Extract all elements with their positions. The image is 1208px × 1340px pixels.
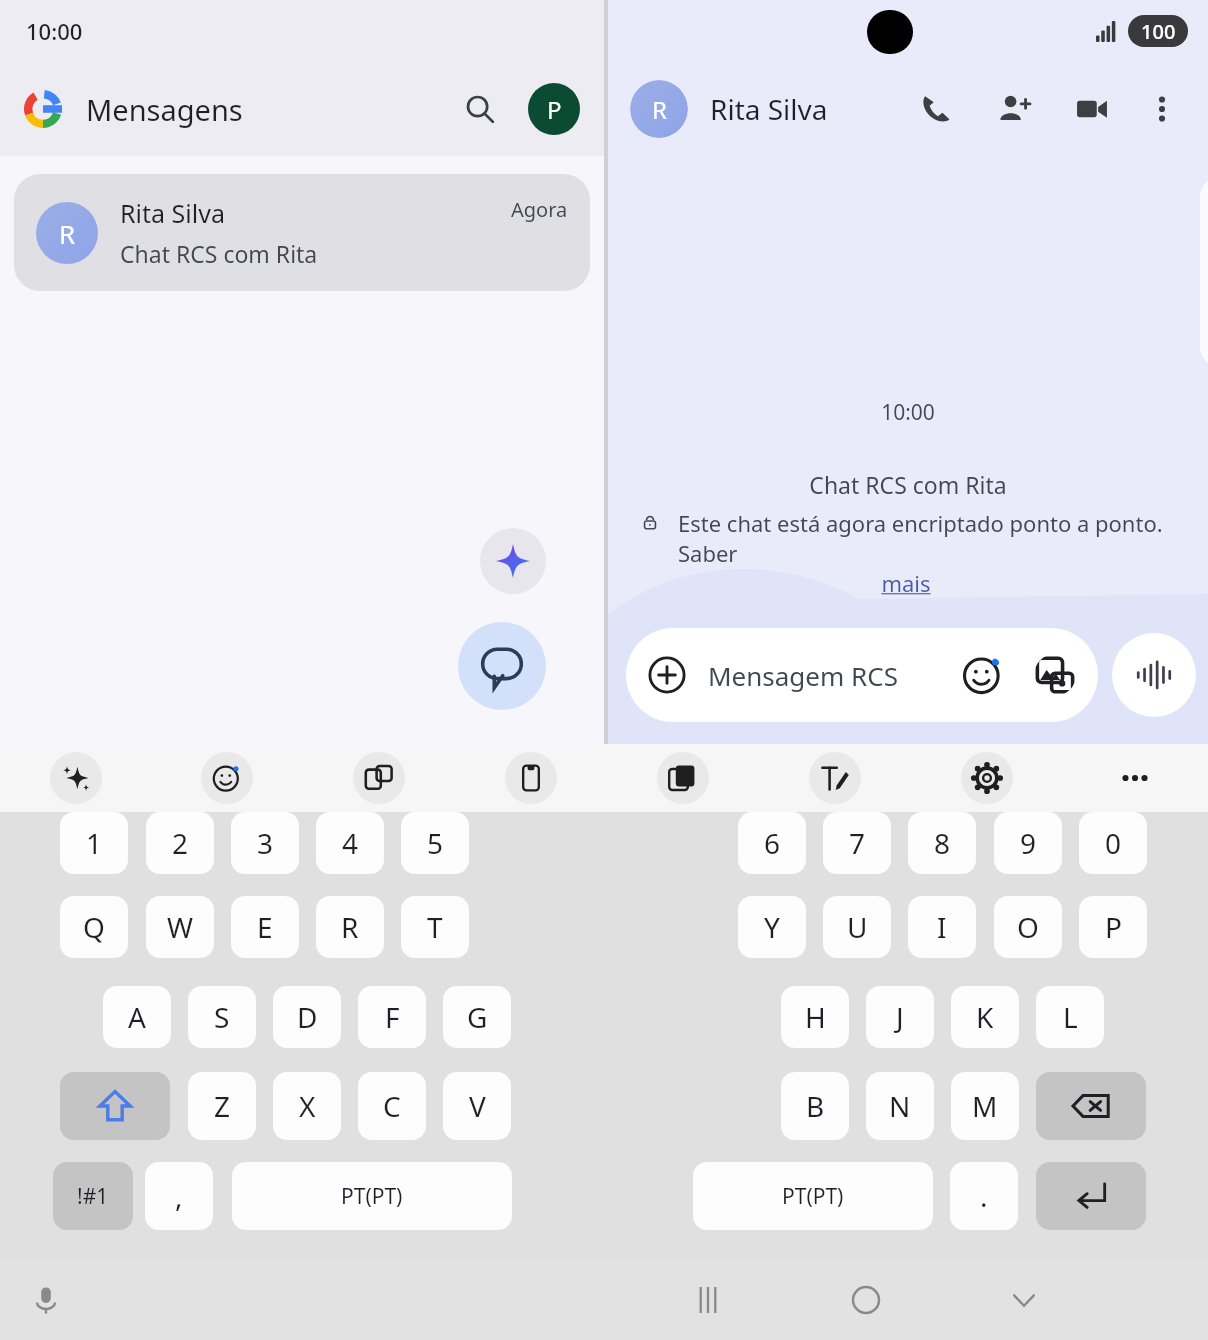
- button[interactable]: H: [781, 986, 849, 1048]
- button[interactable]: J: [866, 986, 934, 1048]
- button[interactable]: G: [443, 986, 511, 1048]
- button[interactable]: Ferramenta: [201, 752, 253, 804]
- staticText: D: [297, 998, 318, 1036]
- staticText: 100: [1141, 18, 1176, 45]
- button[interactable]: 4: [316, 812, 384, 874]
- button[interactable]: Emoji: [962, 654, 1004, 696]
- button[interactable]: Mensagem de voz: [1112, 633, 1196, 717]
- button[interactable]: Conta: [528, 83, 580, 135]
- button[interactable]: E: [231, 896, 299, 958]
- staticText: Y: [764, 908, 780, 946]
- button[interactable]: [1036, 1162, 1146, 1230]
- button[interactable]: Galeria: [1034, 654, 1076, 696]
- staticText: .: [980, 1177, 988, 1215]
- staticText: Rita Silva: [120, 196, 225, 230]
- button[interactable]: 3: [231, 812, 299, 874]
- staticText: N: [889, 1087, 911, 1125]
- button[interactable]: [60, 1072, 170, 1140]
- staticText: 0: [1105, 824, 1122, 862]
- staticText: 10:00: [608, 398, 1208, 427]
- staticText: Agora: [511, 196, 568, 223]
- button[interactable]: ,: [145, 1162, 213, 1230]
- button[interactable]: R: [630, 80, 688, 138]
- button[interactable]: 2: [146, 812, 214, 874]
- button[interactable]: R: [14, 174, 590, 291]
- button[interactable]: Assistente: [480, 528, 546, 594]
- button[interactable]: [1036, 1072, 1146, 1140]
- staticText: X: [299, 1087, 316, 1125]
- button[interactable]: Início: [837, 1271, 895, 1329]
- staticText: K: [976, 998, 994, 1036]
- button[interactable]: A: [103, 986, 171, 1048]
- button[interactable]: N: [866, 1072, 934, 1140]
- button[interactable]: Mais: [1109, 752, 1161, 804]
- button[interactable]: Ferramenta: [353, 752, 405, 804]
- button[interactable]: Z: [188, 1072, 256, 1140]
- button[interactable]: Adicionar pessoa: [986, 81, 1042, 137]
- button[interactable]: R: [316, 896, 384, 958]
- button[interactable]: Videochamada: [1064, 81, 1120, 137]
- button[interactable]: Chamada: [908, 81, 964, 137]
- button[interactable]: U: [823, 896, 891, 958]
- button[interactable]: PT(PT): [232, 1162, 512, 1230]
- staticText: O: [1017, 908, 1039, 946]
- button[interactable]: C: [358, 1072, 426, 1140]
- button[interactable]: 9: [994, 812, 1062, 874]
- button[interactable]: Microfone: [22, 1276, 70, 1324]
- staticText: Rita Silva: [710, 90, 828, 128]
- button[interactable]: M: [951, 1072, 1019, 1140]
- staticText: Mensagem RCS: [708, 658, 898, 693]
- staticText: A: [128, 998, 146, 1036]
- button[interactable]: mais: [658, 568, 1154, 598]
- button[interactable]: Mensagem RCS: [626, 628, 1098, 722]
- button[interactable]: Ferramenta: [809, 752, 861, 804]
- button[interactable]: Ferramenta: [505, 752, 557, 804]
- button[interactable]: W: [146, 896, 214, 958]
- staticText: Z: [214, 1087, 231, 1125]
- button[interactable]: PT(PT): [693, 1162, 933, 1230]
- button[interactable]: !#1: [53, 1162, 133, 1230]
- staticText: 5: [427, 824, 444, 862]
- button[interactable]: L: [1036, 986, 1104, 1048]
- button[interactable]: F: [358, 986, 426, 1048]
- button[interactable]: Recentes: [679, 1271, 737, 1329]
- button[interactable]: 7: [823, 812, 891, 874]
- button[interactable]: 8: [908, 812, 976, 874]
- staticText: E: [257, 908, 273, 946]
- button[interactable]: 1: [60, 812, 128, 874]
- button[interactable]: D: [273, 986, 341, 1048]
- staticText: F: [385, 998, 400, 1036]
- button[interactable]: O: [994, 896, 1062, 958]
- button[interactable]: Ferramenta: [961, 752, 1013, 804]
- button[interactable]: B: [781, 1072, 849, 1140]
- button[interactable]: V: [443, 1072, 511, 1140]
- button[interactable]: 0: [1079, 812, 1147, 874]
- button[interactable]: Mais opções: [1134, 81, 1190, 137]
- staticText: ,: [175, 1177, 183, 1215]
- staticText: 9: [1020, 824, 1037, 862]
- button[interactable]: X: [273, 1072, 341, 1140]
- button[interactable]: Iniciar conversa: [458, 622, 546, 710]
- button[interactable]: Ferramenta: [50, 752, 102, 804]
- staticText: W: [167, 908, 194, 946]
- button[interactable]: Q: [60, 896, 128, 958]
- button[interactable]: Fechar teclado: [995, 1271, 1053, 1329]
- staticText: R: [652, 93, 667, 126]
- button[interactable]: S: [188, 986, 256, 1048]
- staticText: 3: [257, 824, 274, 862]
- button[interactable]: T: [401, 896, 469, 958]
- staticText: Chat RCS com Rita: [608, 469, 1208, 500]
- staticText: G: [467, 998, 488, 1036]
- button[interactable]: 6: [738, 812, 806, 874]
- button[interactable]: Pesquisar: [452, 81, 508, 137]
- button[interactable]: I: [908, 896, 976, 958]
- staticText: 4: [342, 824, 359, 862]
- button[interactable]: Y: [738, 896, 806, 958]
- staticText: L: [1063, 998, 1078, 1036]
- button[interactable]: P: [1079, 896, 1147, 958]
- staticText: P: [1105, 908, 1122, 946]
- button[interactable]: 5: [401, 812, 469, 874]
- button[interactable]: .: [950, 1162, 1018, 1230]
- button[interactable]: Ferramenta: [657, 752, 709, 804]
- button[interactable]: K: [951, 986, 1019, 1048]
